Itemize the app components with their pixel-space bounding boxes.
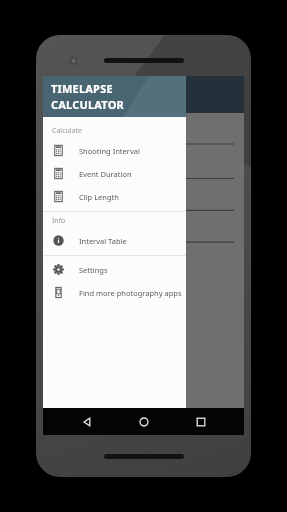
staticText: Info — [52, 216, 66, 226]
staticText: econds — [43, 173, 67, 183]
staticText: Find more photography apps — [79, 288, 182, 298]
staticText: Calculate — [52, 126, 83, 136]
button[interactable]: Event Duration — [43, 162, 186, 185]
button[interactable]: Back — [73, 408, 100, 435]
button[interactable]: Settings — [43, 258, 186, 281]
staticText: Settings — [79, 265, 108, 275]
staticText: Interval Table — [79, 236, 127, 246]
button[interactable]: Interval Table — [43, 229, 186, 252]
button[interactable]: TIMELAPSE — [43, 76, 186, 117]
button[interactable]: Home — [130, 408, 157, 435]
staticText: CALCULATOR — [51, 97, 125, 112]
button[interactable]: Clip Length — [43, 185, 186, 208]
staticText: Event Duration — [79, 169, 132, 179]
staticText: TIMELAPSE — [51, 81, 113, 96]
button[interactable]: Recent apps — [187, 408, 214, 435]
button[interactable]: Find more photography apps — [43, 281, 186, 304]
button[interactable]: Shooting Interval — [43, 139, 186, 162]
staticText: Shooting Interval — [79, 146, 140, 156]
staticText: econds — [43, 136, 67, 146]
staticText: Clip Length — [79, 192, 119, 202]
